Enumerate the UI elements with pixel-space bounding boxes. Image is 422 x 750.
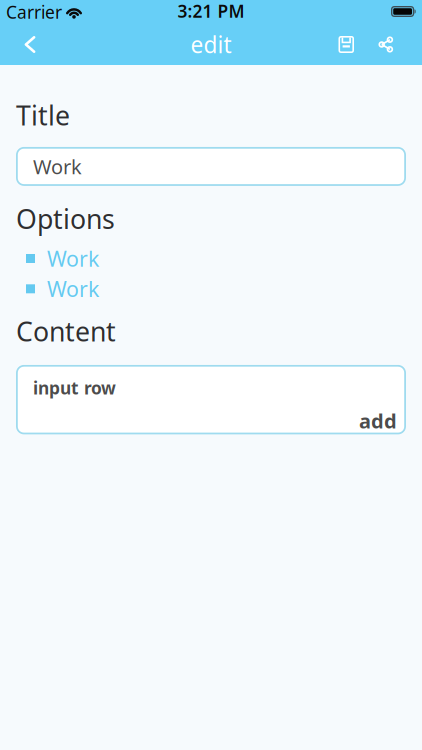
button[interactable]: Save [326,24,366,65]
staticText: 3:21 PM [177,0,244,22]
staticText: Options [16,201,115,236]
staticText: Content [16,313,116,349]
staticText: input row [33,376,116,399]
button[interactable]: Share [366,24,406,65]
button[interactable]: Work [0,244,99,273]
staticText: Carrier [6,0,62,23]
staticText: Work [47,244,99,273]
staticText: Work [47,275,99,303]
staticText: Work [33,153,82,180]
staticText: add [359,407,397,434]
button[interactable]: input row [16,364,406,399]
button[interactable]: Work [16,147,406,186]
button[interactable]: add [359,407,397,434]
staticText: Title [16,97,70,133]
button[interactable]: Back [8,24,52,65]
staticText: edit [190,29,231,59]
button[interactable]: Work [0,275,99,303]
